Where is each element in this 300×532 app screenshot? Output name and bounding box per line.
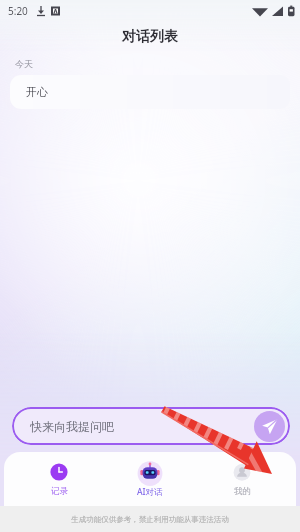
staticText: 记录 xyxy=(51,486,68,497)
staticText: 快来向我提问吧 xyxy=(30,419,114,434)
button[interactable]: 快来向我提问吧 xyxy=(12,407,290,445)
staticText: 今天 xyxy=(15,58,33,69)
staticText: 开心 xyxy=(26,85,48,99)
staticText: AI对话 xyxy=(137,486,163,498)
button[interactable]: 开心 xyxy=(10,75,290,109)
button[interactable]: AI对话 xyxy=(113,460,187,498)
button[interactable]: 我的 xyxy=(205,460,279,497)
button[interactable]: Send xyxy=(254,411,285,442)
staticText: 我的 xyxy=(234,486,251,497)
staticText: 对话列表 xyxy=(122,28,178,46)
staticText: 5:20 xyxy=(8,4,28,18)
button[interactable]: 记录 xyxy=(22,460,96,497)
staticText: 生成功能仅供参考，禁止利用功能从事违法活动 xyxy=(71,515,229,524)
